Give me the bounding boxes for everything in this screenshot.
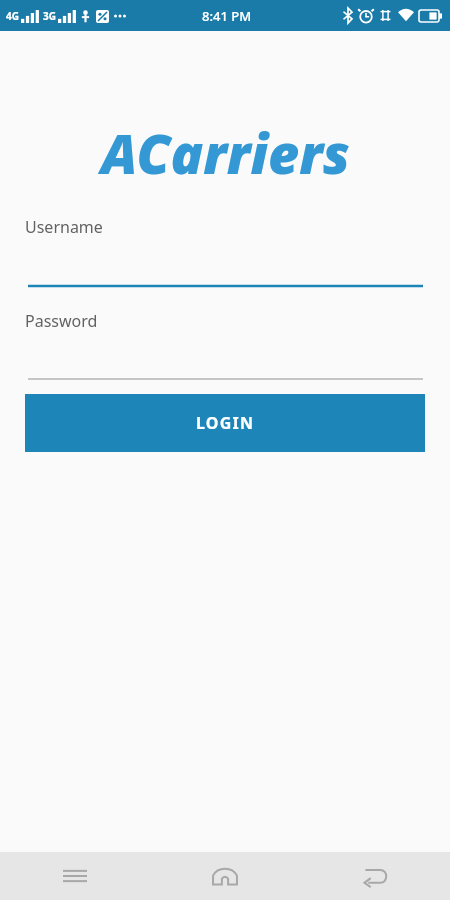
staticText: Password bbox=[25, 310, 98, 332]
button[interactable]: Recents bbox=[0, 852, 150, 900]
staticText: LOGIN bbox=[196, 412, 255, 434]
staticText: 8:41 PM bbox=[202, 7, 252, 25]
button[interactable]: Home bbox=[150, 852, 300, 900]
staticText: 4G bbox=[6, 9, 19, 23]
staticText: 3G bbox=[43, 9, 56, 23]
staticText: Username bbox=[25, 216, 103, 238]
button[interactable]: LOGIN bbox=[25, 394, 425, 452]
staticText: ACarriers bbox=[101, 116, 350, 190]
button[interactable]: Back bbox=[300, 852, 450, 900]
